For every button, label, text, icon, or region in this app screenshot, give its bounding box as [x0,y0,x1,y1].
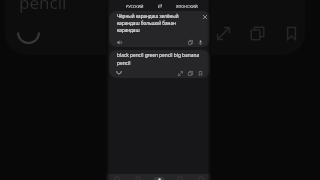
button[interactable]: Translate [106,174,127,180]
button[interactable]: Copy [185,37,195,47]
button[interactable]: Listen [114,68,124,78]
button[interactable]: Microphone [195,37,205,47]
staticText: РУССКИЙ [126,4,144,9]
button[interactable]: ЯПОНСКИЙ [170,0,203,12]
staticText: pencil [19,0,67,14]
staticText: ЯПОНСКИЙ [176,4,198,9]
button[interactable]: Save [195,68,205,78]
staticText: Чёрный карандаш зелёный карандаш большой… [117,13,179,33]
button[interactable]: Swap languages [154,0,166,12]
button[interactable]: Saved [190,174,211,180]
button[interactable]: Transcribe [127,174,148,180]
button[interactable]: РУССКИЙ [120,0,150,12]
button[interactable]: Conversation [169,174,190,180]
button[interactable]: Camera [148,174,169,180]
button[interactable]: Copy [185,68,195,78]
button[interactable]: Listen [114,37,124,47]
button[interactable]: Expand [175,68,185,78]
button[interactable]: Clear [199,11,210,22]
staticText: black pencil green pencil big banana pen… [117,52,200,66]
